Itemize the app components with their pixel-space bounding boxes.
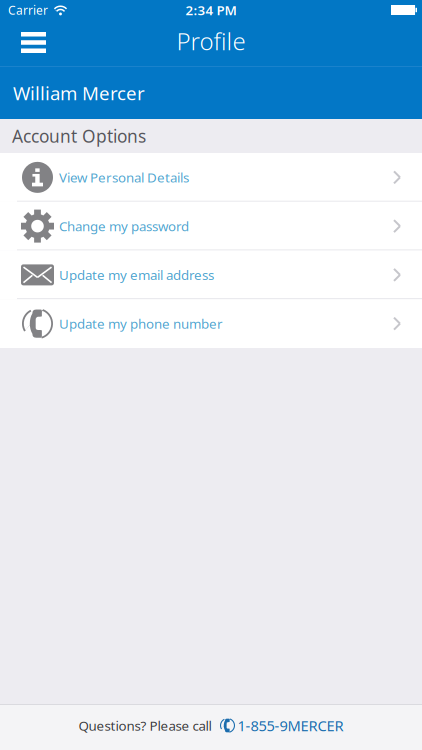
staticText: William Mercer (13, 81, 145, 105)
button[interactable]: View Personal Details (0, 153, 422, 202)
staticText: Update my email address (59, 266, 214, 284)
button[interactable]: Update my phone number (0, 299, 422, 348)
staticText: Carrier (8, 2, 48, 18)
button[interactable]: Update my email address (0, 250, 422, 299)
button[interactable]: Change my password (0, 202, 422, 251)
staticText: View Personal Details (59, 168, 189, 186)
staticText: Profile (176, 25, 245, 57)
staticText: 2:34 PM (185, 1, 236, 19)
staticText: Questions? Please call (78, 717, 211, 734)
staticText: Account Options (12, 124, 146, 147)
button[interactable]: Menu (0, 20, 60, 66)
staticText: 1-855-9MERCER (237, 716, 343, 735)
button[interactable]: 1-855-9MERCER (211, 716, 343, 735)
staticText: Update my phone number (59, 315, 223, 332)
staticText: Change my password (59, 217, 189, 235)
